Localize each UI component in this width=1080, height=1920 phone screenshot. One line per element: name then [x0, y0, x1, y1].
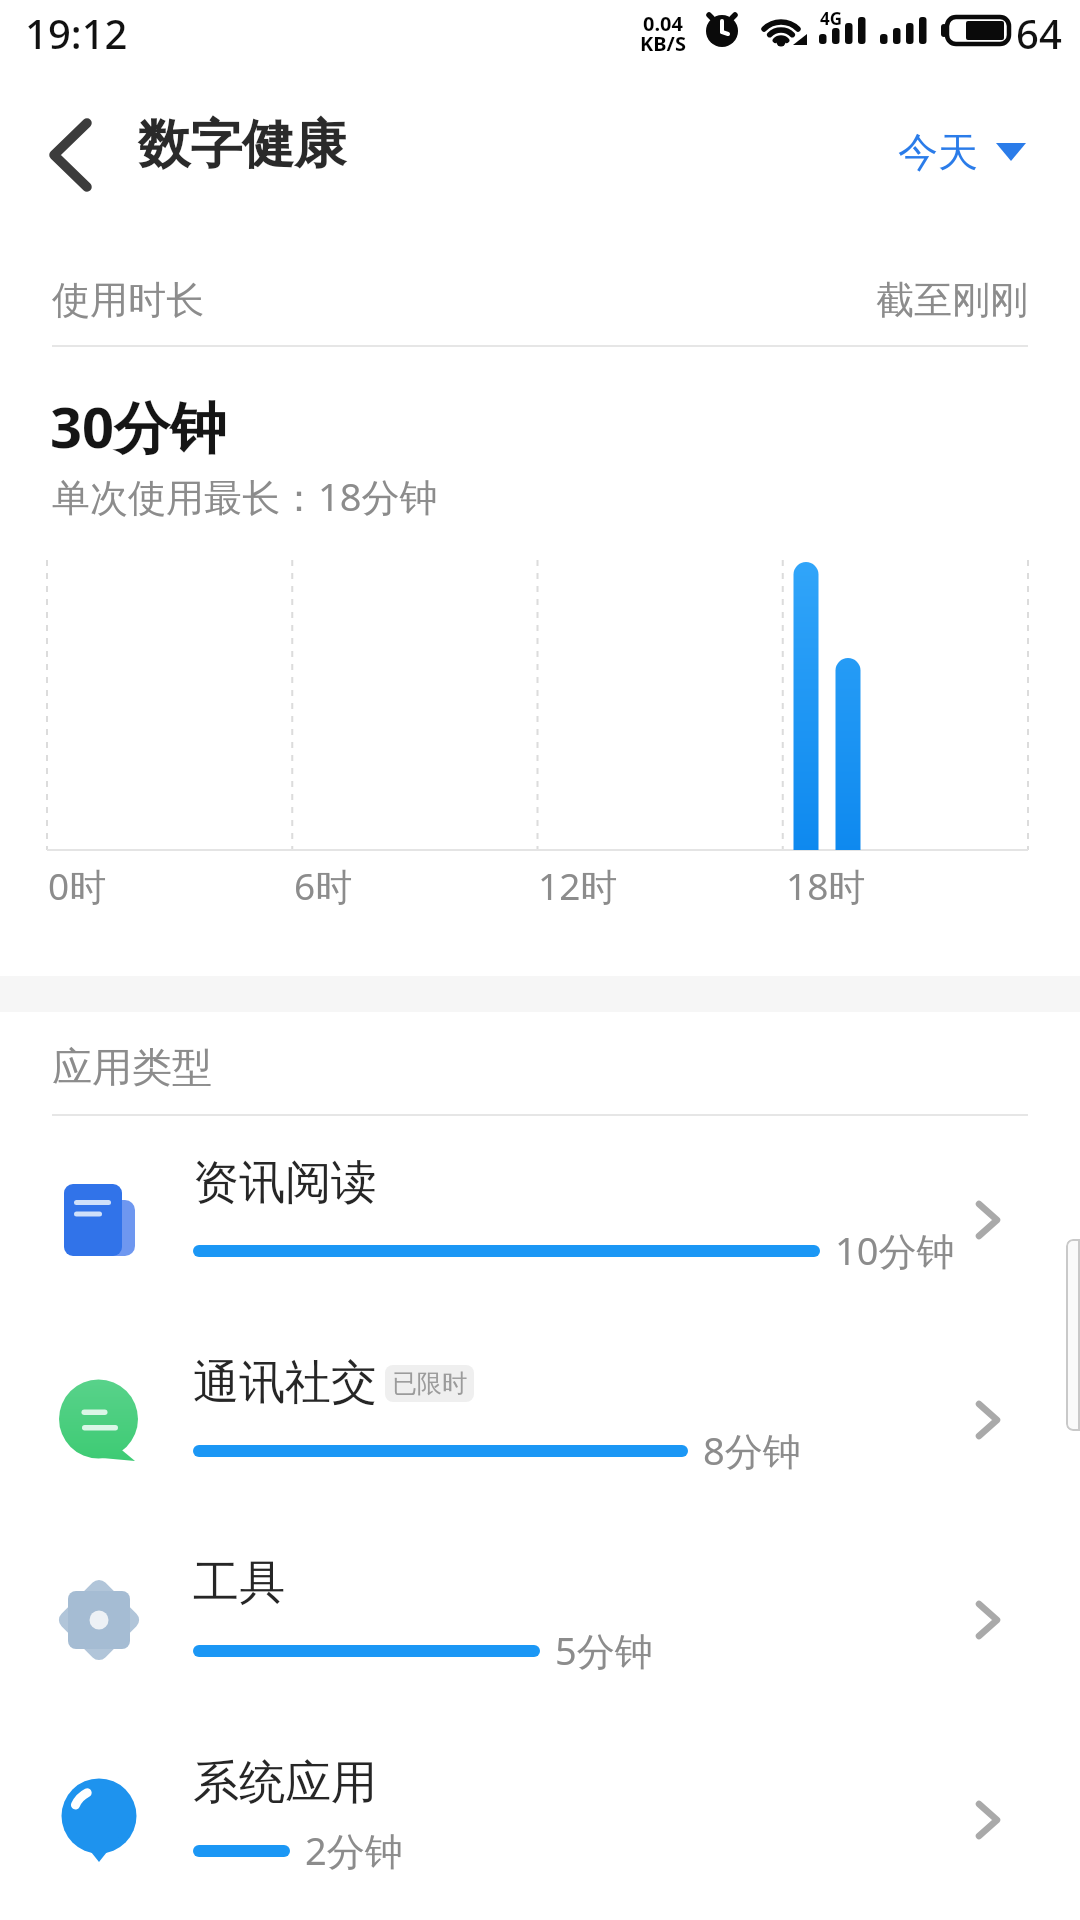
staticText: 已限时 — [392, 1368, 467, 1399]
button[interactable] — [28, 108, 112, 198]
staticText: 8分钟 — [703, 1424, 801, 1476]
staticText: 6时 — [294, 860, 353, 911]
staticText: 0时 — [48, 860, 107, 911]
staticText: 12时 — [538, 860, 618, 911]
staticText: 18时 — [786, 860, 866, 911]
staticText: 4G — [820, 7, 843, 30]
button[interactable]: 资讯阅读 — [0, 1120, 1080, 1320]
staticText: 使用时长 — [52, 276, 204, 324]
button[interactable]: 系统应用 — [0, 1720, 1080, 1920]
staticText: 单次使用最长：18分钟 — [52, 470, 438, 522]
staticText: 数字健康 — [138, 112, 346, 178]
staticText: KB/S — [640, 30, 686, 57]
staticText: 资讯阅读 — [193, 1154, 377, 1212]
staticText: 30分钟 — [50, 388, 227, 464]
staticText: 2分钟 — [305, 1824, 403, 1876]
staticText: 今天 — [898, 127, 978, 177]
staticText: 10分钟 — [835, 1224, 955, 1276]
button[interactable]: 通讯社交 — [0, 1320, 1080, 1520]
button[interactable]: 工具 — [0, 1520, 1080, 1720]
staticText: 19:12 — [25, 6, 128, 60]
staticText: 5分钟 — [555, 1624, 653, 1676]
staticText: 截至刚刚 — [876, 276, 1028, 324]
staticText: 0.04 — [643, 10, 683, 37]
staticText: 系统应用 — [193, 1754, 377, 1812]
button[interactable]: 今天 — [860, 112, 1050, 192]
staticText: 工具 — [193, 1554, 285, 1612]
staticText: 应用类型 — [52, 1042, 212, 1092]
staticText: 通讯社交 — [193, 1354, 377, 1412]
staticText: 64 — [1016, 6, 1062, 60]
